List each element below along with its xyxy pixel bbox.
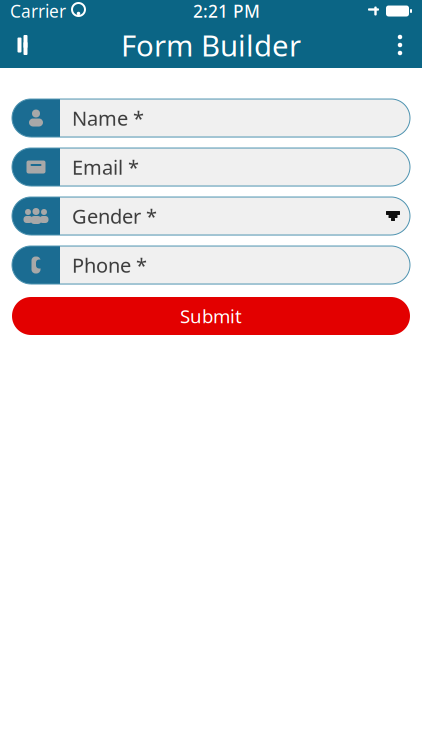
button[interactable]: Email * (12, 148, 410, 186)
staticText: Submit (180, 304, 242, 328)
button[interactable]: Name * (12, 99, 410, 137)
staticText: Gender * (72, 203, 157, 229)
staticText: Form Builder (121, 25, 301, 64)
staticText: Phone * (72, 252, 147, 278)
button[interactable]: Phone * (12, 246, 410, 284)
button[interactable]: Back (0, 22, 44, 68)
staticText: Carrier (10, 0, 66, 22)
staticText: 2:21 PM (193, 0, 260, 22)
button[interactable]: More options (378, 22, 422, 68)
staticText: Email * (72, 154, 139, 180)
staticText: Name * (72, 105, 144, 131)
button[interactable]: Gender * (12, 197, 410, 235)
button[interactable]: Submit (12, 297, 410, 335)
